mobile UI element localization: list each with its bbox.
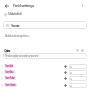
staticText: Find an option or create a new one [5, 54, 39, 58]
staticText: Options [4, 48, 10, 53]
staticText: Team Pulsar [5, 76, 15, 80]
button[interactable]: Team Pulsar [0, 75, 89, 81]
staticText: Field settings [13, 3, 34, 9]
button[interactable]: Team Horizon [0, 82, 89, 88]
button[interactable] [69, 83, 87, 88]
button[interactable] [69, 64, 87, 69]
staticText: Team Horizon [5, 83, 16, 87]
button[interactable]: Reorder [63, 83, 67, 87]
button[interactable]: Reorder [63, 64, 67, 68]
button[interactable]: Team size [3, 21, 87, 29]
button[interactable] [69, 70, 87, 75]
button[interactable]: Multi select field [4, 12, 22, 16]
staticText: Team Sirius [5, 70, 14, 74]
staticText: Multi select field [8, 12, 22, 16]
staticText: Team size [11, 23, 19, 28]
button[interactable]: Find an option or create a new one [3, 53, 87, 59]
button[interactable] [69, 76, 87, 81]
button[interactable]: Team Sirius [0, 69, 89, 75]
button[interactable]: Reorder [63, 76, 67, 80]
button[interactable]: Add option [79, 47, 85, 53]
staticText: Team Jedis [5, 64, 13, 68]
button[interactable]: More options [79, 2, 86, 9]
button[interactable]: Sort options [74, 47, 80, 53]
button[interactable]: Team Jedis [0, 63, 89, 69]
button[interactable]: Reorder [63, 70, 67, 74]
staticText: Add a description... [5, 33, 30, 38]
button[interactable]: Back [4, 3, 10, 9]
